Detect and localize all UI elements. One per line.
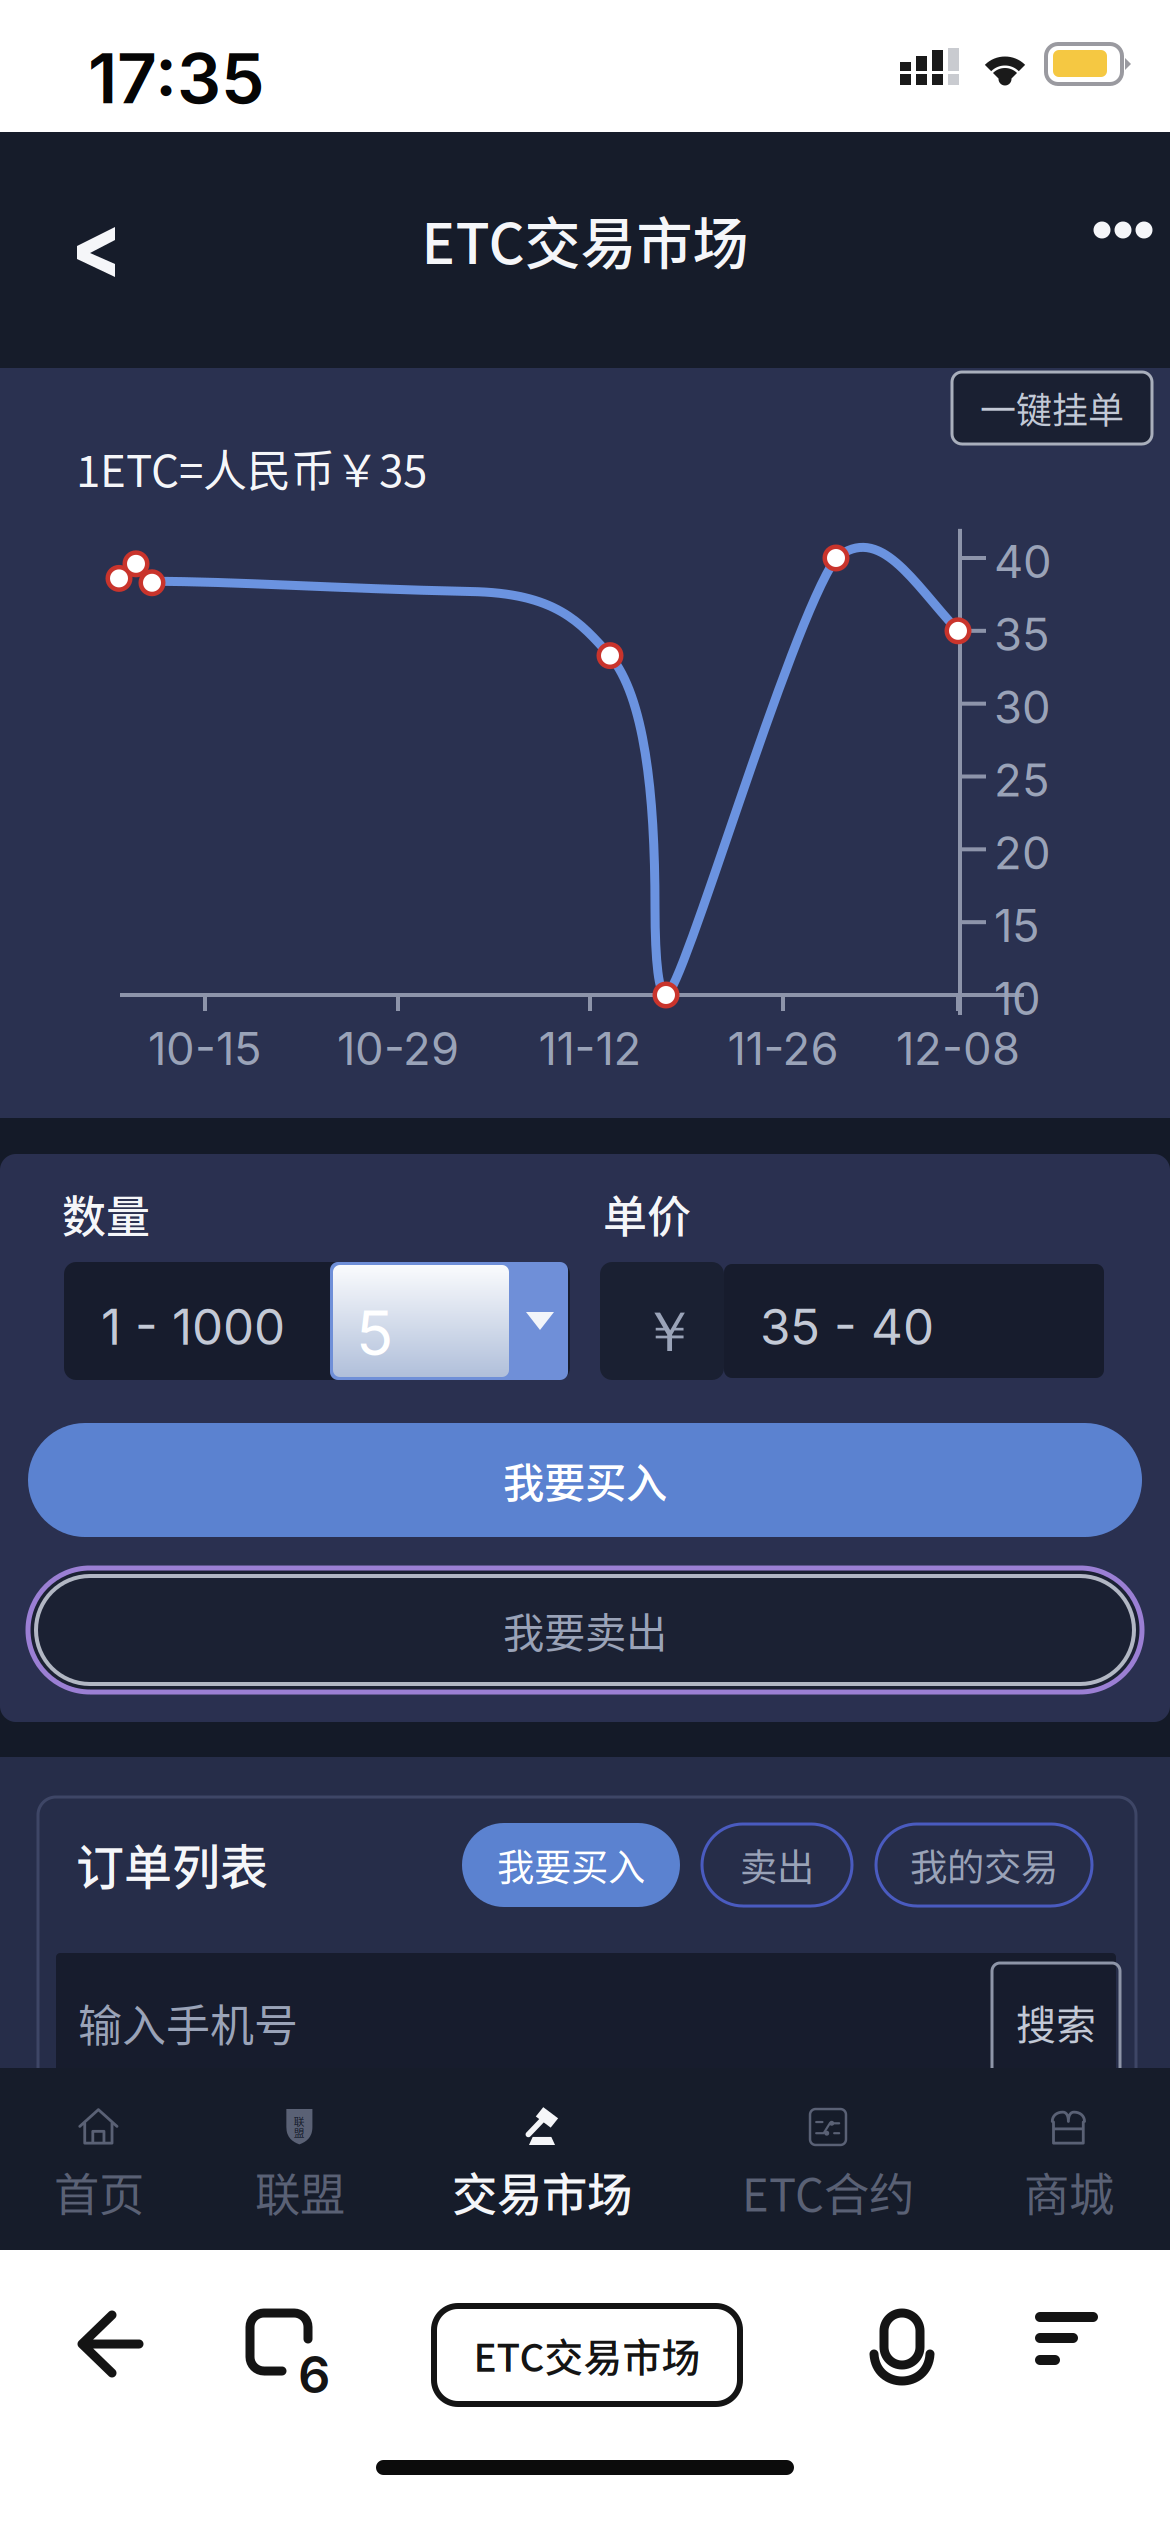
staticText: ETC交易市场 [473, 2327, 700, 2383]
staticText: 数量 [62, 1182, 150, 1246]
button[interactable]: 更多 [1075, 170, 1170, 290]
staticText: 20 [994, 825, 1051, 880]
staticText: 35 [994, 607, 1050, 662]
staticText: ETC合约 [742, 2159, 914, 2225]
staticText: 联 [290, 2105, 307, 2130]
staticText: 单价 [603, 1182, 691, 1246]
staticText: 5 [356, 1296, 393, 1370]
button[interactable]: 联 [187, 2068, 413, 2250]
staticText: 6 [298, 2344, 330, 2405]
button[interactable]: 我要买入 [28, 1423, 1142, 1537]
button[interactable]: 我要卖出 [26, 1566, 1144, 1694]
staticText: 11-26 [727, 1021, 838, 1076]
staticText: 我要卖出 [503, 1600, 667, 1660]
staticText: 我要买入 [503, 1450, 667, 1510]
button[interactable]: 我的交易 [876, 1824, 1092, 1906]
button[interactable]: 标签页 [244, 2308, 364, 2418]
staticText: 订单列表 [76, 1829, 268, 1898]
staticText: 15 [994, 898, 1040, 953]
staticText: 35 - 40 [760, 1297, 934, 1357]
staticText: ￥ [641, 1297, 697, 1367]
staticText: 我要买入 [497, 1838, 645, 1892]
staticText: 联盟 [255, 2159, 345, 2225]
button[interactable]: 返回 [0, 157, 170, 307]
staticText: 25 [994, 752, 1050, 807]
button[interactable]: 卖出 [702, 1824, 852, 1906]
button[interactable]: 一键挂单 [952, 372, 1152, 444]
staticText: 10-15 [148, 1021, 262, 1076]
staticText: 12-08 [896, 1021, 1020, 1076]
staticText: 搜索 [1016, 1993, 1096, 2051]
staticText: 30 [994, 680, 1051, 735]
staticText: 盟 [290, 2123, 307, 2148]
button[interactable]: 语音 [856, 2304, 966, 2414]
staticText: 40 [994, 534, 1052, 589]
button[interactable]: 菜单 [1022, 2299, 1132, 2409]
staticText: 17:35 [88, 36, 265, 120]
button[interactable]: 首页 [0, 2068, 212, 2250]
button[interactable]: ETC合约 [715, 2068, 941, 2250]
staticText: 商城 [1024, 2159, 1114, 2225]
staticText: 交易市场 [452, 2159, 632, 2225]
staticText: 我的交易 [910, 1838, 1058, 1892]
staticText: 1ETC=人民币￥35 [76, 436, 427, 500]
button[interactable]: 我要买入 [462, 1823, 680, 1907]
button[interactable]: 商城 [956, 2068, 1170, 2250]
staticText: 1 - 1000 [101, 1297, 285, 1357]
staticText: 10-29 [337, 1021, 459, 1076]
staticText: 卖出 [740, 1838, 814, 1892]
staticText: 11-12 [538, 1021, 641, 1076]
button[interactable]: 后退 [60, 2309, 180, 2419]
staticText: ETC交易市场 [421, 199, 748, 280]
button[interactable]: 交易市场 [429, 2068, 655, 2250]
staticText: 一键挂单 [980, 382, 1124, 434]
staticText: 10 [994, 971, 1041, 1026]
button[interactable]: ETC交易市场 [434, 2306, 740, 2404]
staticText: 首页 [54, 2159, 144, 2225]
button[interactable]: 搜索 [992, 1963, 1120, 2081]
staticText: 输入手机号 [78, 1991, 298, 2055]
